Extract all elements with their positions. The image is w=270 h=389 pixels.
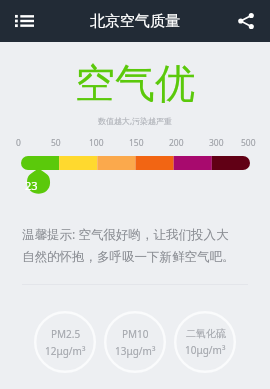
staticText: 50 xyxy=(51,137,61,149)
staticText: 温馨提示: 空气很好哟，让我们投入大 xyxy=(22,226,229,243)
button[interactable]: 二氧化硫 xyxy=(174,311,236,373)
staticText: 空气优 xyxy=(0,58,270,108)
staticText: PM10 xyxy=(122,327,149,341)
staticText: 200 xyxy=(169,137,184,149)
staticText: 10μg/m³ xyxy=(185,343,226,357)
staticText: 150 xyxy=(129,137,144,149)
staticText: 300 xyxy=(209,137,224,149)
staticText: PM2.5 xyxy=(51,327,81,341)
button[interactable]: PM10 xyxy=(104,311,166,373)
staticText: 23 xyxy=(25,178,38,193)
staticText: 自然的怀抱，多呼吸一下新鲜空气吧。 xyxy=(22,249,235,265)
staticText: 北京空气质量 xyxy=(90,12,180,31)
staticText: 数值越大,污染越严重 xyxy=(0,115,270,126)
button[interactable]: Menu xyxy=(6,3,42,39)
staticText: 13μg/m³ xyxy=(115,344,156,358)
staticText: 0 xyxy=(16,137,21,149)
staticText: 二氧化硫 xyxy=(186,327,226,340)
button[interactable]: PM2.5 xyxy=(34,311,96,373)
button[interactable]: Share xyxy=(229,4,263,38)
staticText: 12μg/m³ xyxy=(45,344,86,358)
staticText: 500 xyxy=(241,137,256,149)
staticText: 100 xyxy=(89,137,104,149)
